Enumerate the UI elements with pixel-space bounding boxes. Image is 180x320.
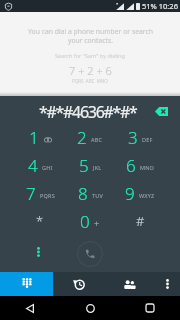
- button[interactable]: Recents: [53, 272, 104, 296]
- staticText: *#*#4636#*#*: [39, 101, 137, 123]
- button[interactable]: *: [15, 207, 65, 235]
- staticText: 9: [125, 182, 135, 205]
- staticText: You can dial a phone number or search yo…: [28, 27, 153, 45]
- staticText: 3: [128, 126, 138, 149]
- button[interactable]: More options: [29, 243, 47, 261]
- staticText: +: [94, 217, 100, 229]
- button[interactable]: 7: [15, 179, 65, 207]
- button[interactable]: 6: [115, 151, 165, 179]
- button[interactable]: Backspace: [151, 101, 171, 121]
- staticText: PQRS ABC MNO: [72, 78, 108, 84]
- button[interactable]: 3: [115, 123, 165, 151]
- button[interactable]: Home: [60, 296, 120, 320]
- staticText: 0: [80, 210, 90, 233]
- staticText: 7 + 2 + 6: [69, 63, 112, 78]
- staticText: 7: [26, 182, 36, 205]
- button[interactable]: 2: [65, 123, 115, 151]
- button[interactable]: 0: [65, 207, 115, 235]
- button[interactable]: Recent apps: [120, 296, 180, 320]
- button[interactable]: 5: [65, 151, 115, 179]
- staticText: DEF: [142, 136, 153, 143]
- staticText: 51% 10:26: [142, 1, 178, 11]
- button[interactable]: 9: [115, 179, 165, 207]
- button[interactable]: Back: [0, 296, 60, 320]
- button[interactable]: Call: [77, 241, 103, 267]
- staticText: WXYZ: [139, 192, 155, 199]
- staticText: 5: [79, 154, 89, 177]
- staticText: TUV: [92, 192, 103, 199]
- staticText: 1: [29, 126, 39, 149]
- button[interactable]: Contacts: [104, 272, 155, 296]
- button[interactable]: Dialpad: [0, 272, 53, 296]
- button[interactable]: 4: [15, 151, 65, 179]
- staticText: 8: [78, 182, 88, 205]
- staticText: 6: [126, 154, 136, 177]
- staticText: MNO: [140, 164, 155, 171]
- button[interactable]: #: [115, 207, 165, 235]
- button[interactable]: 1: [15, 123, 65, 151]
- staticText: PQRS: [40, 192, 55, 199]
- staticText: Search for "Sam" by dialing: [55, 52, 125, 59]
- staticText: ABC: [91, 136, 103, 143]
- staticText: 2: [77, 126, 87, 149]
- button[interactable]: More options: [155, 272, 180, 296]
- button[interactable]: 8: [65, 179, 115, 207]
- staticText: GHI: [42, 164, 53, 171]
- staticText: JKL: [93, 164, 102, 171]
- staticText: #: [136, 212, 145, 230]
- staticText: 4: [28, 154, 38, 177]
- staticText: *: [36, 212, 44, 230]
